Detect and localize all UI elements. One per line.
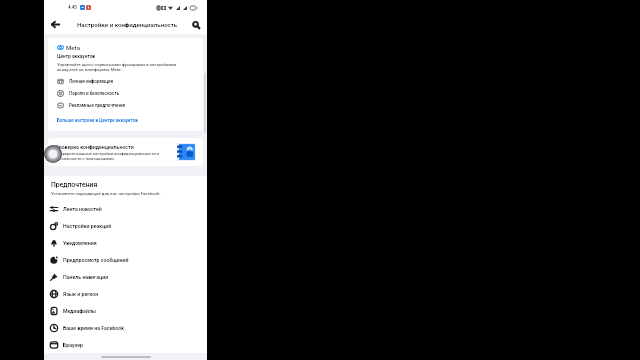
- staticText: Рекламные предпочтения: [69, 103, 126, 108]
- staticText: Предпросмотр сообщений: [63, 257, 129, 263]
- staticText: Предпочтения: [51, 181, 98, 189]
- staticText: Проверка конфиденциальности: [55, 144, 134, 150]
- button[interactable]: Уведомления: [44, 234, 207, 251]
- staticText: Настройки и конфиденциальность: [77, 21, 178, 28]
- staticText: Настройки реакций: [63, 223, 112, 229]
- staticText: Ваше время на Facebook: [63, 325, 124, 331]
- button[interactable]: Медиафайлы: [44, 302, 207, 319]
- staticText: Медиафайлы: [63, 308, 97, 314]
- staticText: Установите подходящие для вас настройки …: [51, 191, 161, 196]
- button[interactable]: Пароли и безопасность: [57, 87, 194, 99]
- staticText: 4:45: [68, 5, 77, 10]
- button[interactable]: Больше настроек в Центре аккаунтов: [48, 114, 203, 131]
- button[interactable]: Рекламные предпочтения: [57, 99, 194, 111]
- button[interactable]: Search: [188, 17, 203, 32]
- button[interactable]: Лента новостей: [44, 200, 207, 217]
- staticText: Пароли и безопасность: [69, 91, 120, 96]
- staticText: Браузер: [63, 342, 83, 348]
- staticText: Meta: [66, 44, 80, 51]
- staticText: Панель навигации: [63, 274, 109, 280]
- staticText: Управляйте кросс-сервисными функциями и …: [57, 62, 194, 72]
- staticText: Личная информация: [69, 79, 114, 84]
- button[interactable]: Ваше время на Facebook: [44, 319, 207, 336]
- staticText: Уведомления: [63, 240, 97, 246]
- staticText: Больше настроек в Центре аккаунтов: [57, 118, 138, 123]
- button[interactable]: Язык и регион: [44, 285, 207, 302]
- staticText: Лента новостей: [63, 206, 102, 212]
- staticText: Язык и регион: [63, 291, 99, 297]
- button[interactable]: Панель навигации: [44, 268, 207, 285]
- button[interactable]: Личная информация: [57, 75, 194, 87]
- staticText: Центр аккаунтов: [57, 54, 96, 60]
- staticText: Проверьте важные настройки конфиденциаль…: [55, 151, 173, 161]
- button[interactable]: Браузер: [44, 336, 207, 353]
- button[interactable]: Предпросмотр сообщений: [44, 251, 207, 268]
- button[interactable]: Back: [48, 17, 63, 32]
- button[interactable]: Настройки реакций: [44, 217, 207, 234]
- button[interactable]: Проверка конфиденциальности: [48, 138, 203, 166]
